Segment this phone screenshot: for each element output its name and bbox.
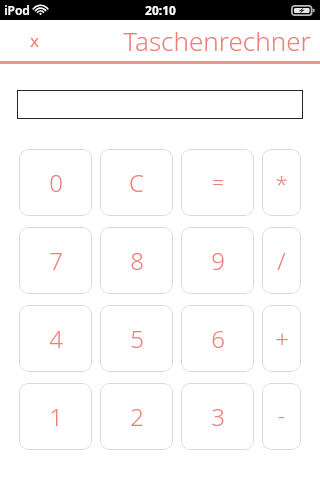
staticText: * — [275, 168, 288, 198]
button[interactable]: - — [262, 383, 301, 450]
staticText: 20:10 — [145, 2, 176, 18]
button[interactable]: Close — [20, 23, 49, 58]
staticText: 6 — [211, 322, 225, 355]
button[interactable]: 0 — [19, 149, 92, 216]
button[interactable]: 1 — [19, 383, 92, 450]
staticText: x — [30, 29, 39, 52]
button[interactable]: 3 — [181, 383, 254, 450]
staticText: 3 — [211, 400, 225, 433]
button[interactable]: * — [262, 149, 301, 216]
staticText: - — [278, 402, 285, 431]
button[interactable]: + — [262, 305, 301, 372]
button[interactable]: C — [100, 149, 173, 216]
staticText: 2 — [130, 400, 144, 433]
staticText: iPod — [4, 2, 30, 18]
button[interactable]: Display — [17, 90, 303, 119]
staticText: / — [277, 244, 286, 277]
button[interactable]: 9 — [181, 227, 254, 294]
button[interactable]: 6 — [181, 305, 254, 372]
staticText: + — [275, 322, 289, 355]
staticText: 5 — [130, 322, 144, 355]
button[interactable]: 4 — [19, 305, 92, 372]
staticText: Taschenrechner — [123, 23, 311, 58]
button[interactable]: 5 — [100, 305, 173, 372]
staticText: 7 — [49, 244, 63, 277]
staticText: = — [212, 168, 224, 197]
button[interactable]: / — [262, 227, 301, 294]
staticText: 1 — [49, 400, 63, 433]
button[interactable]: 2 — [100, 383, 173, 450]
staticText: 0 — [49, 166, 63, 199]
staticText: 9 — [211, 244, 225, 277]
staticText: 8 — [130, 244, 144, 277]
staticText: 4 — [49, 322, 63, 355]
button[interactable]: = — [181, 149, 254, 216]
staticText: C — [129, 166, 144, 199]
button[interactable]: 8 — [100, 227, 173, 294]
button[interactable]: 7 — [19, 227, 92, 294]
